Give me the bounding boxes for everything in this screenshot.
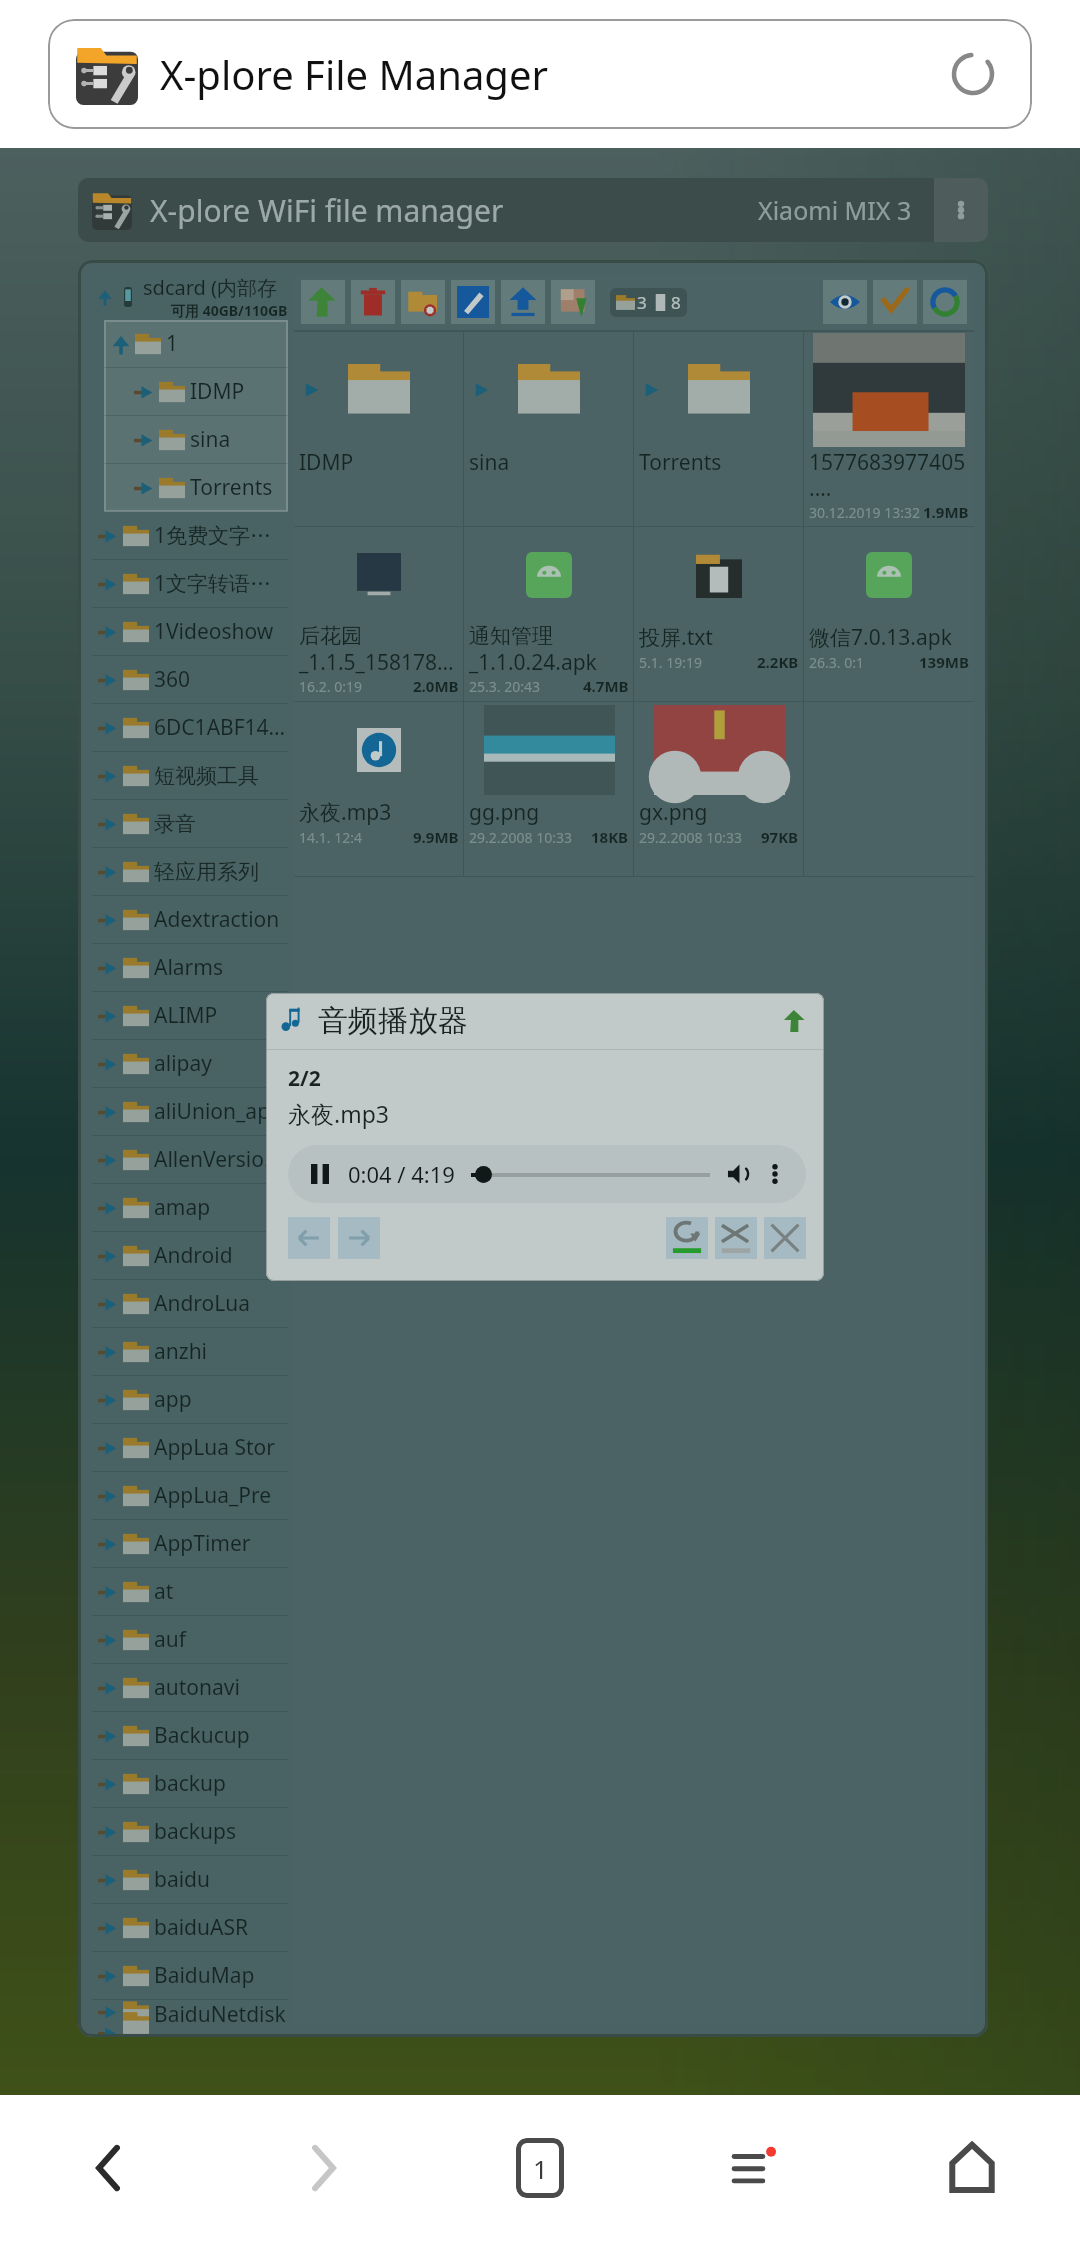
staticText: 6DC1ABF14D235E3 <box>154 713 288 742</box>
button[interactable]: 1Videoshow <box>92 608 288 655</box>
button[interactable]: 1免费文字转语音 <box>92 512 288 559</box>
button[interactable]: AllenVersionPath <box>92 1136 288 1183</box>
button[interactable]: More <box>760 1159 790 1189</box>
button[interactable]: Preview <box>823 280 867 324</box>
button[interactable]: 6DC1ABF14D235E3 <box>92 704 288 751</box>
staticText: AppLua_Pre <box>154 1481 272 1510</box>
button[interactable]: sina <box>464 332 634 526</box>
staticText: X-plore WiFi file manager <box>150 190 504 231</box>
button[interactable]: 轻应用系列 <box>92 848 288 895</box>
button[interactable]: backups <box>92 1808 288 1855</box>
button[interactable]: X-plore File Manager <box>48 19 1032 129</box>
button[interactable]: amap <box>92 1184 288 1231</box>
button[interactable]: Select all <box>873 280 917 324</box>
button[interactable]: More options <box>934 178 988 242</box>
staticText: auf <box>154 1625 186 1654</box>
button[interactable]: Previous track <box>288 1217 330 1259</box>
staticText: Torrents <box>639 448 722 477</box>
button[interactable]: Reload <box>942 43 1004 105</box>
button[interactable]: 后花园 _1.1.5_1581781179. <box>294 527 464 701</box>
button[interactable]: AppLua_Pre <box>92 1472 288 1519</box>
button[interactable]: Close player <box>764 1217 806 1259</box>
button[interactable]: autonavi <box>92 1664 288 1711</box>
button[interactable]: Forward <box>282 2126 366 2210</box>
staticText: Android <box>154 1241 233 1270</box>
staticText: gx.png <box>639 798 708 827</box>
button[interactable]: Volume <box>722 1157 756 1191</box>
button[interactable]: anzhi <box>92 1328 288 1375</box>
button[interactable]: sdcard (内部存储设备) <box>92 274 288 320</box>
button[interactable]: 1文字转语音的文本txt <box>92 560 288 607</box>
button[interactable]: 360 <box>92 656 288 703</box>
button[interactable]: 录音 <box>92 800 288 847</box>
staticText: 2.0MB <box>413 676 459 696</box>
button[interactable]: app <box>92 1376 288 1423</box>
staticText: gg.png <box>469 798 540 827</box>
button[interactable]: sina <box>104 416 288 463</box>
button[interactable]: Menu <box>720 2132 792 2204</box>
button[interactable]: New folder <box>401 280 445 324</box>
button[interactable]: 微信7.0.13.apk <box>804 527 974 701</box>
button[interactable]: gg.png <box>464 702 634 876</box>
button[interactable]: 1577683977405.… <box>804 332 974 526</box>
button[interactable]: BaiduMap <box>92 1952 288 1999</box>
button[interactable]: Next track <box>338 1217 380 1259</box>
button[interactable]: IDMP <box>294 332 464 526</box>
staticText: IDMP <box>299 448 354 477</box>
staticText: 360 <box>154 665 191 694</box>
staticText: 9.9MB <box>413 827 459 847</box>
button[interactable]: Repeat <box>666 1217 708 1259</box>
staticText: 短视频工具 <box>154 763 259 789</box>
button[interactable]: 永夜.mp3 <box>294 702 464 876</box>
button[interactable]: 短视频工具 <box>92 752 288 799</box>
staticText: ALIMP <box>154 1001 218 1030</box>
button[interactable]: Tabs <box>516 2138 564 2198</box>
button[interactable]: AndroLua <box>92 1280 288 1327</box>
button[interactable]: backup <box>92 1760 288 1807</box>
staticText: baidu <box>154 1865 211 1894</box>
staticText: 5.1. 19:19 <box>639 653 702 672</box>
button[interactable]: 1 <box>104 320 288 367</box>
button[interactable]: ALIMP <box>92 992 288 1039</box>
staticText: 18KB <box>591 827 629 847</box>
button[interactable]: Pause <box>304 1157 338 1191</box>
button[interactable]: 投屏.txt <box>634 527 804 701</box>
button[interactable]: Up <box>301 280 345 324</box>
button[interactable]: at <box>92 1568 288 1615</box>
button[interactable]: baiduASR <box>92 1904 288 1951</box>
staticText: 1.9MB <box>923 502 969 522</box>
staticText: AppLua Stor <box>154 1433 275 1462</box>
button[interactable]: Home <box>930 2126 1014 2210</box>
button[interactable]: Collapse <box>778 1004 812 1038</box>
button[interactable]: IDMP <box>104 368 288 415</box>
button[interactable]: AppLua Stor <box>92 1424 288 1471</box>
staticText: 29.2.2008 10:33 <box>639 828 742 847</box>
staticText: 8 <box>671 291 681 314</box>
button[interactable]: Android <box>92 1232 288 1279</box>
button[interactable]: BaiduNetdisk <box>92 2000 288 2023</box>
button[interactable]: Backucup <box>92 1712 288 1759</box>
button[interactable]: Torrents <box>104 464 288 511</box>
button[interactable]: Alarms <box>92 944 288 991</box>
button[interactable]: gx.png <box>634 702 804 876</box>
staticText: X-plore File Manager <box>160 47 549 101</box>
button[interactable]: AppTimer <box>92 1520 288 1567</box>
button[interactable]: alipay <box>92 1040 288 1087</box>
button[interactable]: 通知管理 _1.1.0.24.apk <box>464 527 634 701</box>
button[interactable]: Torrents <box>634 332 804 526</box>
button[interactable]: Shuffle <box>715 1217 757 1259</box>
staticText: Alarms <box>154 953 223 982</box>
button[interactable]: Download <box>551 280 595 324</box>
button[interactable]: Back <box>66 2126 150 2210</box>
staticText: AndroLua <box>154 1289 251 1318</box>
staticText: app <box>154 1385 192 1414</box>
button[interactable]: Delete <box>351 280 395 324</box>
button[interactable]: baidu <box>92 1856 288 1903</box>
button[interactable]: Refresh <box>923 280 967 324</box>
button[interactable]: aliUnion_apk <box>92 1088 288 1135</box>
staticText: 可用 40GB/110GB <box>171 301 288 320</box>
button[interactable]: auf <box>92 1616 288 1663</box>
button[interactable]: Upload <box>501 280 545 324</box>
button[interactable]: Adextraction <box>92 896 288 943</box>
button[interactable]: Edit <box>451 280 495 324</box>
